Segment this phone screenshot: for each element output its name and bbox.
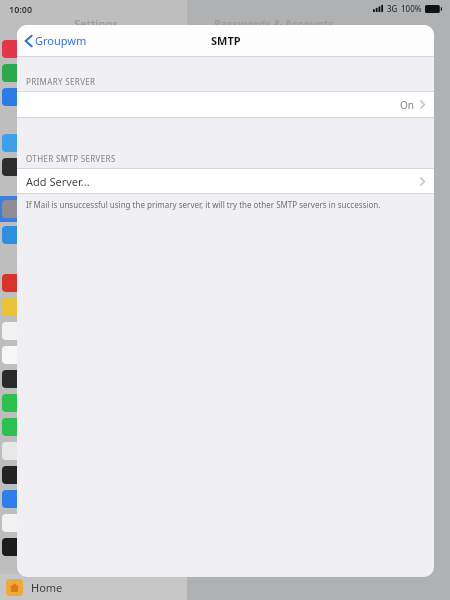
button[interactable]: Home <box>0 574 187 600</box>
staticText: 10:00 <box>9 3 33 15</box>
staticText: Settings <box>74 16 118 31</box>
staticText: Passwords & Accounts <box>214 16 334 31</box>
staticText: 100% <box>401 3 422 14</box>
button[interactable]: On <box>17 92 434 117</box>
button[interactable]: Add Server... <box>17 169 434 193</box>
staticText: On <box>400 98 414 112</box>
staticText: Groupwm <box>35 33 87 48</box>
staticText: SMTP <box>211 33 241 48</box>
staticText: Add Server... <box>26 174 90 189</box>
staticText: If Mail is unsuccessful using the primar… <box>26 199 381 210</box>
staticText: OTHER SMTP SERVERS <box>26 153 116 164</box>
staticText: 3G <box>387 3 398 14</box>
staticText: PRIMARY SERVER <box>26 76 96 87</box>
other: Home <box>6 579 23 596</box>
button[interactable]: Groupwm <box>22 29 90 52</box>
staticText: Home <box>31 580 63 595</box>
